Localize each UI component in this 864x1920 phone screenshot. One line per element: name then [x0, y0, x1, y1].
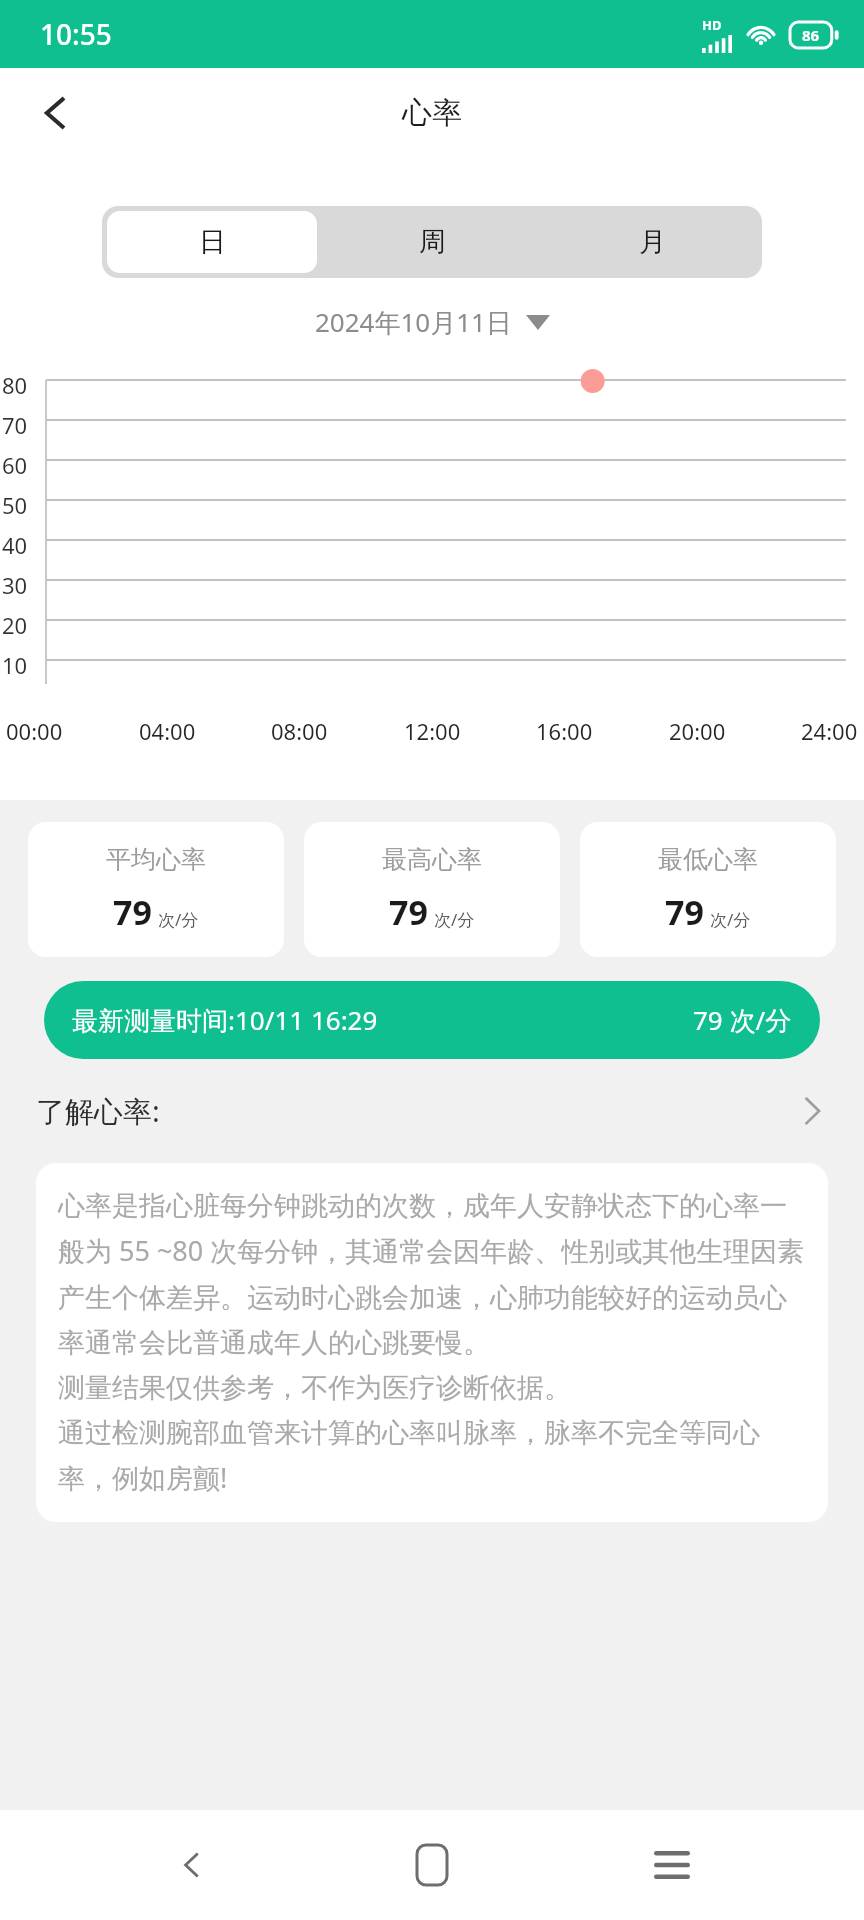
staticText: 了解心率: [36, 1091, 160, 1131]
staticText: 20:00 [669, 716, 726, 746]
staticText: 79 [389, 889, 428, 935]
staticText: 86 [802, 25, 820, 45]
button[interactable]: 了解心率: [0, 1059, 864, 1163]
staticText: 10 [2, 650, 28, 680]
staticText: 12:00 [404, 716, 461, 746]
button[interactable]: 最高心率 [304, 822, 560, 957]
button[interactable]: Recent apps [624, 1817, 720, 1913]
staticText: 50 [2, 490, 28, 520]
staticText: 最新测量时间:10/11 16:29 [72, 1002, 378, 1038]
staticText: 79 [113, 889, 152, 935]
staticText: 日 [199, 225, 226, 259]
staticText: 心率是指心脏每分钟跳动的次数，成年人安静状态下的心率一般为 55 ~80 次每分… [58, 1189, 806, 1496]
staticText: 30 [2, 570, 28, 600]
staticText: 00:00 [6, 716, 63, 746]
button[interactable]: 日 [107, 211, 317, 273]
staticText: 79 次/分 [693, 1002, 792, 1038]
staticText: 次/分 [434, 908, 475, 931]
staticText: 月 [639, 225, 666, 259]
staticText: 最高心率 [382, 844, 482, 875]
staticText: 24:00 [801, 716, 858, 746]
button[interactable]: 2024年10月11日 [0, 304, 864, 340]
staticText: 40 [2, 530, 28, 560]
button[interactable]: 周 [327, 211, 537, 273]
staticText: 08:00 [271, 716, 328, 746]
staticText: 16:00 [536, 716, 593, 746]
staticText: 最低心率 [658, 844, 758, 875]
staticText: 20 [2, 610, 28, 640]
other: Learn more [796, 1095, 828, 1127]
staticText: 2024年10月11日 [315, 304, 512, 340]
button[interactable]: Back [20, 78, 90, 148]
button[interactable]: Home [384, 1817, 480, 1913]
button[interactable]: 平均心率 [28, 822, 284, 957]
button[interactable]: 月 [547, 211, 757, 273]
staticText: 60 [2, 450, 28, 480]
staticText: 79 [665, 889, 704, 935]
staticText: 80 [2, 370, 28, 400]
staticText: 70 [2, 410, 28, 440]
staticText: 周 [419, 225, 446, 259]
staticText: 次/分 [158, 908, 199, 931]
staticText: 平均心率 [106, 844, 206, 875]
button[interactable]: 最新测量时间:10/11 16:29 [44, 981, 820, 1059]
staticText: 10:55 [40, 15, 112, 53]
staticText: HD [702, 16, 722, 34]
staticText: 04:00 [139, 716, 196, 746]
button[interactable]: Back [144, 1817, 240, 1913]
staticText: 心率 [402, 94, 462, 132]
staticText: 次/分 [710, 908, 751, 931]
button[interactable]: 最低心率 [580, 822, 836, 957]
